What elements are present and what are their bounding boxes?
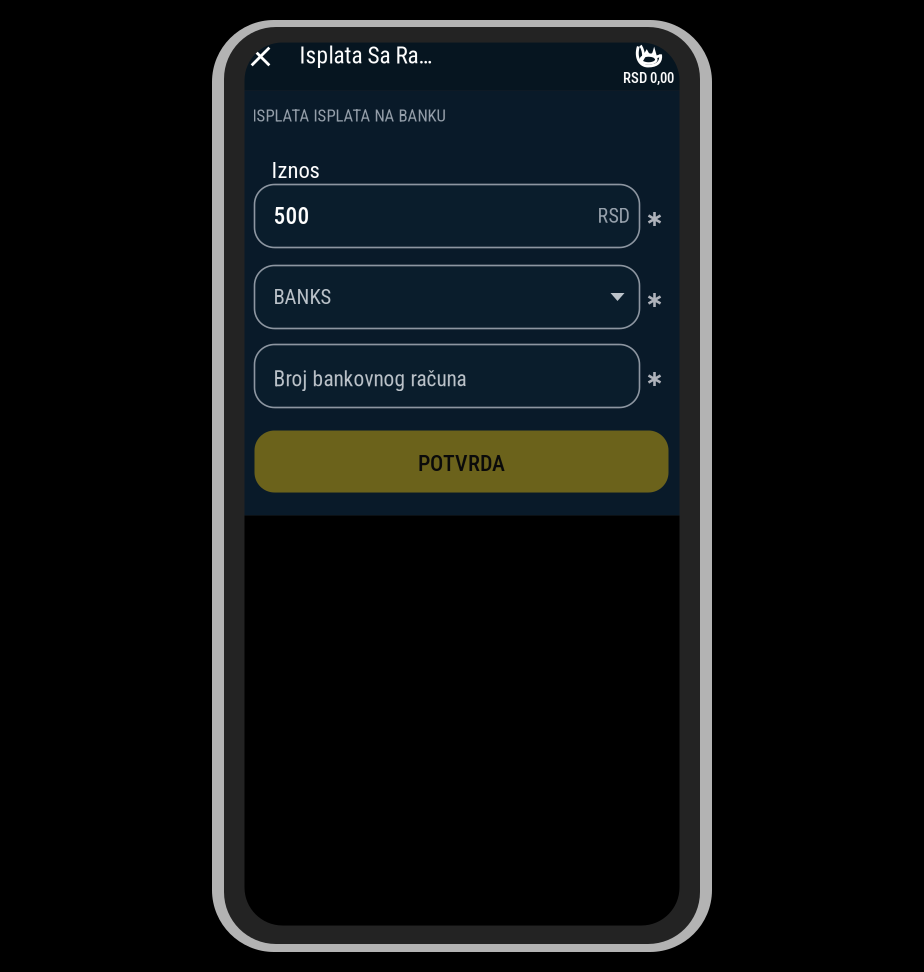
staticText: POTVRDA bbox=[418, 451, 505, 476]
staticText: BANKS bbox=[273, 285, 331, 309]
staticText: RSD bbox=[597, 204, 629, 228]
staticText: Iznos bbox=[271, 157, 319, 183]
staticText: Isplata Sa Ra… bbox=[299, 42, 432, 69]
button[interactable]: Close bbox=[246, 42, 274, 70]
staticText: 500 bbox=[273, 202, 309, 230]
button[interactable]: Isplata Sa Ra… bbox=[299, 40, 432, 70]
staticText: RSD 0,00 bbox=[623, 69, 674, 87]
button[interactable]: POTVRDA bbox=[254, 430, 668, 492]
staticText: Broj bankovnog računa bbox=[273, 366, 466, 391]
button[interactable]: Balance RSD 0,00 bbox=[620, 43, 676, 87]
staticText: ISPLATA ISPLATA NA BANKU bbox=[252, 106, 445, 125]
button[interactable]: BANKS bbox=[244, 265, 679, 328]
